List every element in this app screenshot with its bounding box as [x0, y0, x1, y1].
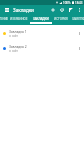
staticText: ИСТОРИЯ — [54, 17, 68, 21]
button[interactable]: ИСТОРИЯ — [52, 15, 70, 25]
staticText: 18:43 — [75, 1, 83, 5]
button[interactable]: ИЗБРАННОЕ — [8, 15, 30, 25]
button[interactable]: Flag — [66, 5, 75, 15]
button[interactable]: Menu — [0, 5, 13, 15]
staticText: ЧТЕНИЕ — [0, 17, 9, 21]
button[interactable]: ЗАКЛАДКИ — [30, 15, 52, 25]
button[interactable]: Закладка 1 — [0, 26, 84, 41]
staticText: Закладки — [13, 7, 34, 13]
button[interactable]: Row options — [74, 26, 84, 41]
staticText: сайт — [12, 34, 18, 38]
staticText: ИЗБРАННОЕ — [10, 17, 28, 21]
staticText: сайт — [12, 49, 18, 53]
button[interactable]: ЧТЕНИЕ — [0, 15, 9, 25]
staticText: ЗАКЛАДКИ — [33, 17, 49, 21]
staticText: Закладка 2 — [9, 44, 27, 48]
button[interactable]: Закладка 2 — [0, 41, 84, 56]
staticText: ЗАМЕТКИ — [72, 17, 84, 21]
button[interactable]: Row options — [74, 41, 84, 56]
button[interactable]: Add — [48, 5, 57, 15]
staticText: Закладка 1 — [9, 29, 27, 33]
button[interactable]: Sync — [57, 5, 66, 15]
button[interactable]: More options — [75, 5, 84, 15]
staticText: 100% — [63, 1, 71, 5]
button[interactable]: ЗАМЕТКИ — [70, 15, 84, 25]
